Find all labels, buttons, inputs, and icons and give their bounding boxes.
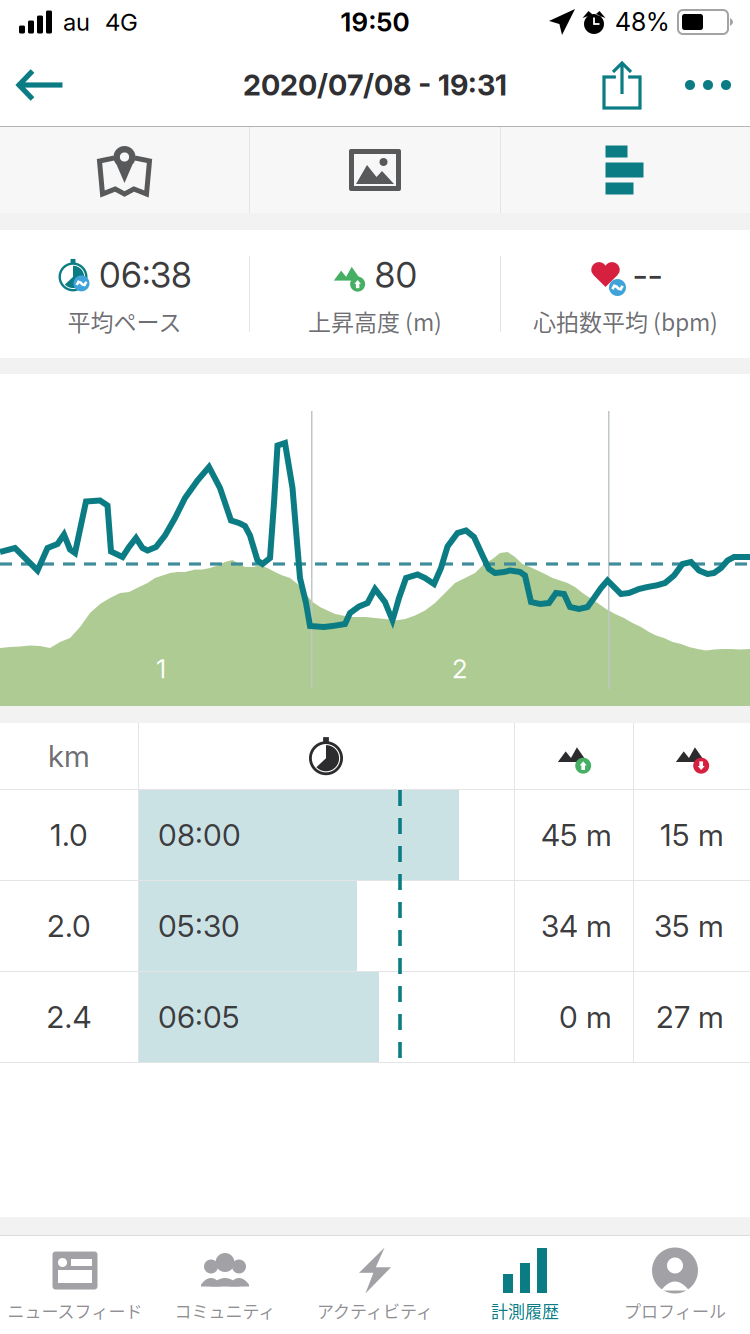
button[interactable]: コミュニティ	[150, 1236, 300, 1334]
staticText: 平均ペース	[67, 304, 181, 338]
staticText: au	[63, 7, 90, 36]
button[interactable]: Photos	[250, 127, 500, 213]
button[interactable]: 計測履歴	[450, 1236, 600, 1334]
staticText: 1.0	[50, 817, 88, 853]
staticText: 06:38	[99, 254, 192, 296]
staticText: 06:05	[158, 999, 240, 1035]
staticText: 48%	[615, 7, 670, 37]
staticText: プロフィール	[624, 1298, 726, 1323]
staticText: 2	[452, 653, 467, 684]
button[interactable]: Share	[578, 44, 666, 126]
staticText: --	[632, 254, 662, 296]
button[interactable]: Map	[0, 127, 249, 213]
staticText: ニュースフィード	[7, 1298, 142, 1323]
button[interactable]: アクティビティ	[300, 1236, 450, 1334]
staticText: 1	[156, 653, 166, 684]
button[interactable]: Statistics	[501, 127, 750, 213]
button[interactable]: プロフィール	[600, 1236, 750, 1334]
staticText: 80	[374, 254, 417, 296]
staticText: 2.0	[47, 908, 91, 944]
staticText: 45 m	[541, 817, 612, 853]
staticText: コミュニティ	[174, 1298, 275, 1323]
staticText: 34 m	[541, 908, 612, 944]
button[interactable]: More options	[666, 44, 750, 126]
staticText: 27 m	[656, 999, 724, 1035]
button[interactable]: ニュースフィード	[0, 1236, 150, 1334]
staticText: 2.4	[46, 999, 91, 1035]
staticText: 35 m	[654, 908, 724, 944]
staticText: km	[48, 738, 90, 774]
staticText: 08:00	[158, 817, 241, 853]
staticText: 4G	[105, 7, 138, 36]
staticText: 05:30	[158, 908, 240, 944]
staticText: 15 m	[660, 817, 724, 853]
staticText: アクティビティ	[317, 1298, 433, 1323]
staticText: 2020/07/08 - 19:31	[243, 67, 507, 103]
staticText: 心拍数平均 (bpm)	[533, 304, 718, 338]
staticText: 19:50	[340, 6, 409, 38]
staticText: 計測履歴	[491, 1298, 559, 1323]
staticText: 0 m	[559, 999, 612, 1035]
staticText: 上昇高度 (m)	[308, 304, 442, 338]
button[interactable]: Back	[0, 44, 80, 126]
